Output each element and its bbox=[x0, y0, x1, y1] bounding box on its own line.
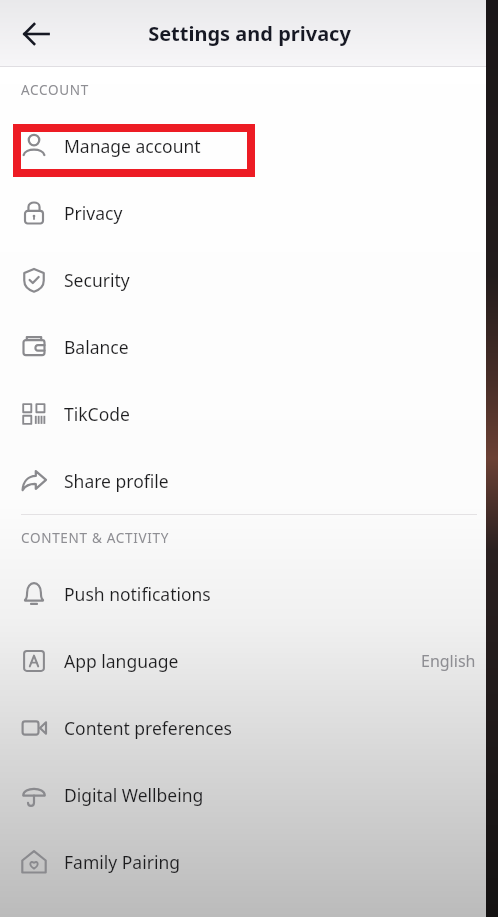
staticText: English bbox=[421, 650, 476, 672]
staticText: TikCode bbox=[64, 402, 130, 426]
staticText: Settings and privacy bbox=[148, 20, 351, 47]
button[interactable]: Share profile bbox=[0, 447, 498, 514]
staticText: ACCOUNT bbox=[21, 81, 89, 99]
staticText: Push notifications bbox=[64, 582, 211, 606]
staticText: Content preferences bbox=[64, 716, 232, 740]
button[interactable]: Family Pairing bbox=[0, 828, 498, 895]
staticText: Share profile bbox=[64, 469, 169, 493]
staticText: Family Pairing bbox=[64, 850, 181, 874]
button[interactable]: Digital Wellbeing bbox=[0, 761, 498, 828]
staticText: Privacy bbox=[64, 201, 123, 225]
button[interactable]: Security bbox=[0, 246, 498, 313]
staticText: CONTENT & ACTIVITY bbox=[21, 529, 170, 547]
staticText: Balance bbox=[64, 335, 129, 359]
button[interactable]: Manage account bbox=[0, 112, 498, 179]
staticText: Digital Wellbeing bbox=[64, 783, 204, 807]
staticText: Security bbox=[64, 268, 130, 292]
button[interactable]: Content preferences bbox=[0, 694, 498, 761]
button[interactable]: Balance bbox=[0, 313, 498, 380]
button[interactable]: Back bbox=[14, 12, 58, 56]
staticText: Manage account bbox=[64, 134, 201, 158]
button[interactable]: Push notifications bbox=[0, 560, 498, 627]
button[interactable]: App language bbox=[0, 627, 498, 694]
button[interactable]: Privacy bbox=[0, 179, 498, 246]
staticText: App language bbox=[64, 649, 179, 673]
button[interactable]: TikCode bbox=[0, 380, 498, 447]
